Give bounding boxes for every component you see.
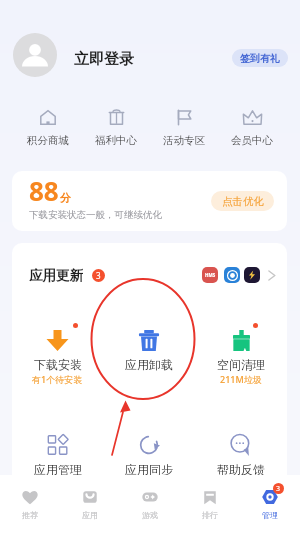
button[interactable]: 应用更新 xyxy=(12,267,287,283)
button[interactable]: 点击优化 xyxy=(211,191,274,211)
button[interactable]: 推荐 xyxy=(0,475,60,533)
button[interactable]: 应用同步 xyxy=(103,434,195,477)
staticText: 应用 xyxy=(82,510,98,520)
button[interactable]: 签到有礼 xyxy=(232,49,288,67)
button[interactable]: 应用 xyxy=(60,475,120,533)
button[interactable]: 应用卸载 xyxy=(103,330,195,372)
staticText: 有1个待安装 xyxy=(32,373,83,385)
button[interactable]: 管理 xyxy=(240,475,300,533)
button[interactable]: 排行 xyxy=(180,475,240,533)
button[interactable]: 帮助反馈 xyxy=(195,434,287,477)
button[interactable]: 空间清理 xyxy=(195,330,287,385)
staticText: 立即登录 xyxy=(74,50,134,69)
button[interactable]: 积分商城 xyxy=(14,110,82,147)
staticText: 88 xyxy=(29,173,59,208)
staticText: 推荐 xyxy=(22,510,38,520)
staticText: 下载安装 xyxy=(34,357,82,372)
staticText: 3 xyxy=(96,270,101,281)
button[interactable]: Profile avatar xyxy=(13,33,57,77)
staticText: 帮助反馈 xyxy=(217,462,265,477)
button[interactable]: 88 xyxy=(12,171,287,231)
staticText: 积分商城 xyxy=(27,134,69,147)
staticText: 应用管理 xyxy=(34,462,82,477)
staticText: 管理 xyxy=(262,510,278,520)
staticText: 签到有礼 xyxy=(240,52,280,65)
staticText: 游戏 xyxy=(142,510,158,520)
staticText: 活动专区 xyxy=(163,134,205,147)
button[interactable]: 游戏 xyxy=(120,475,180,533)
staticText: 应用同步 xyxy=(125,462,173,477)
button[interactable]: 活动专区 xyxy=(150,110,218,147)
button[interactable]: 会员中心 xyxy=(218,110,286,147)
staticText: 应用更新 xyxy=(29,267,83,283)
staticText: 点击优化 xyxy=(222,195,264,208)
staticText: 排行 xyxy=(202,510,218,520)
button[interactable]: 下载安装 xyxy=(12,330,103,385)
staticText: 空间清理 xyxy=(217,357,265,372)
button[interactable]: 应用管理 xyxy=(12,434,103,477)
staticText: 下载安装状态一般，可继续优化 xyxy=(29,209,162,221)
button[interactable]: 福利中心 xyxy=(82,110,150,147)
staticText: 会员中心 xyxy=(231,134,273,147)
staticText: 3 xyxy=(276,484,281,494)
staticText: HMS xyxy=(205,272,216,278)
staticText: 应用卸载 xyxy=(125,357,173,372)
staticText: 分 xyxy=(60,191,71,205)
staticText: 211M垃圾 xyxy=(220,373,262,385)
staticText: 福利中心 xyxy=(95,134,137,147)
